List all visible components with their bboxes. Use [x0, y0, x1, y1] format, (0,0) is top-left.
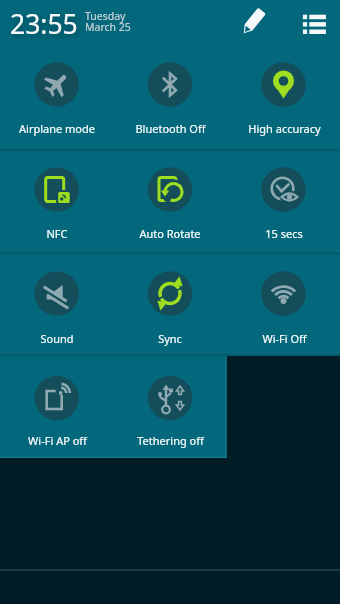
- staticText: Sync: [158, 331, 182, 346]
- staticText: 23:55: [10, 6, 78, 42]
- staticText: NFC: [46, 226, 68, 241]
- button[interactable]: [227, 51, 340, 151]
- staticText: Wi-Fi AP off: [28, 433, 87, 448]
- button[interactable]: [227, 260, 340, 360]
- staticText: Wi-Fi Off: [262, 331, 307, 346]
- staticText: Airplane mode: [19, 121, 95, 136]
- staticText: 15 secs: [265, 226, 303, 241]
- button[interactable]: [294, 8, 332, 44]
- staticText: High accuracy: [248, 121, 321, 136]
- button[interactable]: [0, 364, 113, 464]
- staticText: Bluetooth Off: [135, 121, 206, 136]
- staticText: Tuesday: [85, 9, 126, 23]
- button[interactable]: [0, 260, 113, 360]
- button[interactable]: [113, 364, 226, 464]
- button[interactable]: [113, 260, 226, 360]
- button[interactable]: [113, 156, 226, 256]
- staticText: Auto Rotate: [139, 226, 201, 241]
- button[interactable]: [227, 156, 340, 256]
- staticText: Sound: [40, 331, 74, 346]
- button[interactable]: [0, 156, 113, 256]
- staticText: Tethering off: [137, 433, 204, 448]
- button[interactable]: [232, 6, 274, 46]
- staticText: March 25: [85, 20, 131, 34]
- button[interactable]: [0, 51, 113, 151]
- button[interactable]: [113, 51, 226, 151]
